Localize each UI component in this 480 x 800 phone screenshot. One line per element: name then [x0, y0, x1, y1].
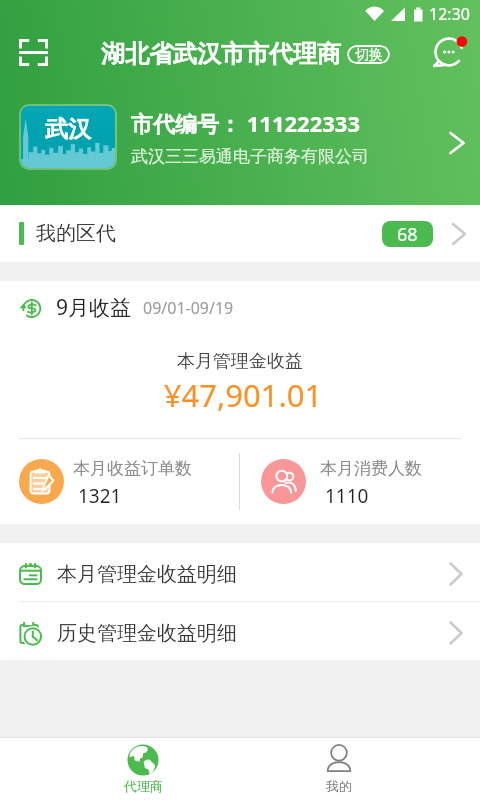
button[interactable]: 我的区代 [0, 205, 480, 262]
staticText: 我的 [326, 778, 352, 794]
staticText: ¥47,901.01 [3, 374, 480, 416]
button[interactable]: 代理商 [23, 737, 263, 800]
staticText: 历史管理金收益明细 [57, 621, 237, 646]
button[interactable]: 切换 [347, 45, 390, 64]
staticText: 12:30 [429, 3, 470, 25]
staticText: 湖北省武汉市市代理商 [101, 39, 341, 69]
staticText: 本月消费人数 [320, 458, 422, 479]
button[interactable]: 本月收益订单数 [0, 439, 239, 524]
staticText: 武汉三三易通电子商务有限公司 [131, 146, 369, 167]
staticText: 我的区代 [36, 221, 116, 246]
staticText: 本月收益订单数 [73, 458, 192, 479]
staticText: 代理商 [124, 778, 163, 794]
button[interactable]: 本月消费人数 [240, 439, 480, 524]
staticText: 1110 [325, 483, 369, 509]
button[interactable]: 我的 [219, 737, 459, 800]
staticText: 本月管理金收益 [0, 350, 480, 373]
staticText: 1321 [78, 483, 122, 509]
button[interactable]: 本月管理金收益明细 [0, 543, 480, 601]
staticText: 09/01-09/19 [143, 297, 234, 319]
staticText: 68 [397, 222, 418, 247]
staticText: 本月管理金收益明细 [57, 562, 237, 587]
button[interactable]: Messages [427, 28, 475, 76]
staticText: 市代编号： 111222333 [131, 108, 360, 138]
button[interactable]: 历史管理金收益明细 [0, 602, 480, 660]
staticText: 切换 [355, 46, 383, 64]
staticText: 9月收益 [56, 293, 132, 322]
button[interactable]: 武汉 [0, 104, 480, 170]
staticText: 武汉 [45, 115, 91, 144]
button[interactable]: Scan QR code [9, 28, 57, 76]
